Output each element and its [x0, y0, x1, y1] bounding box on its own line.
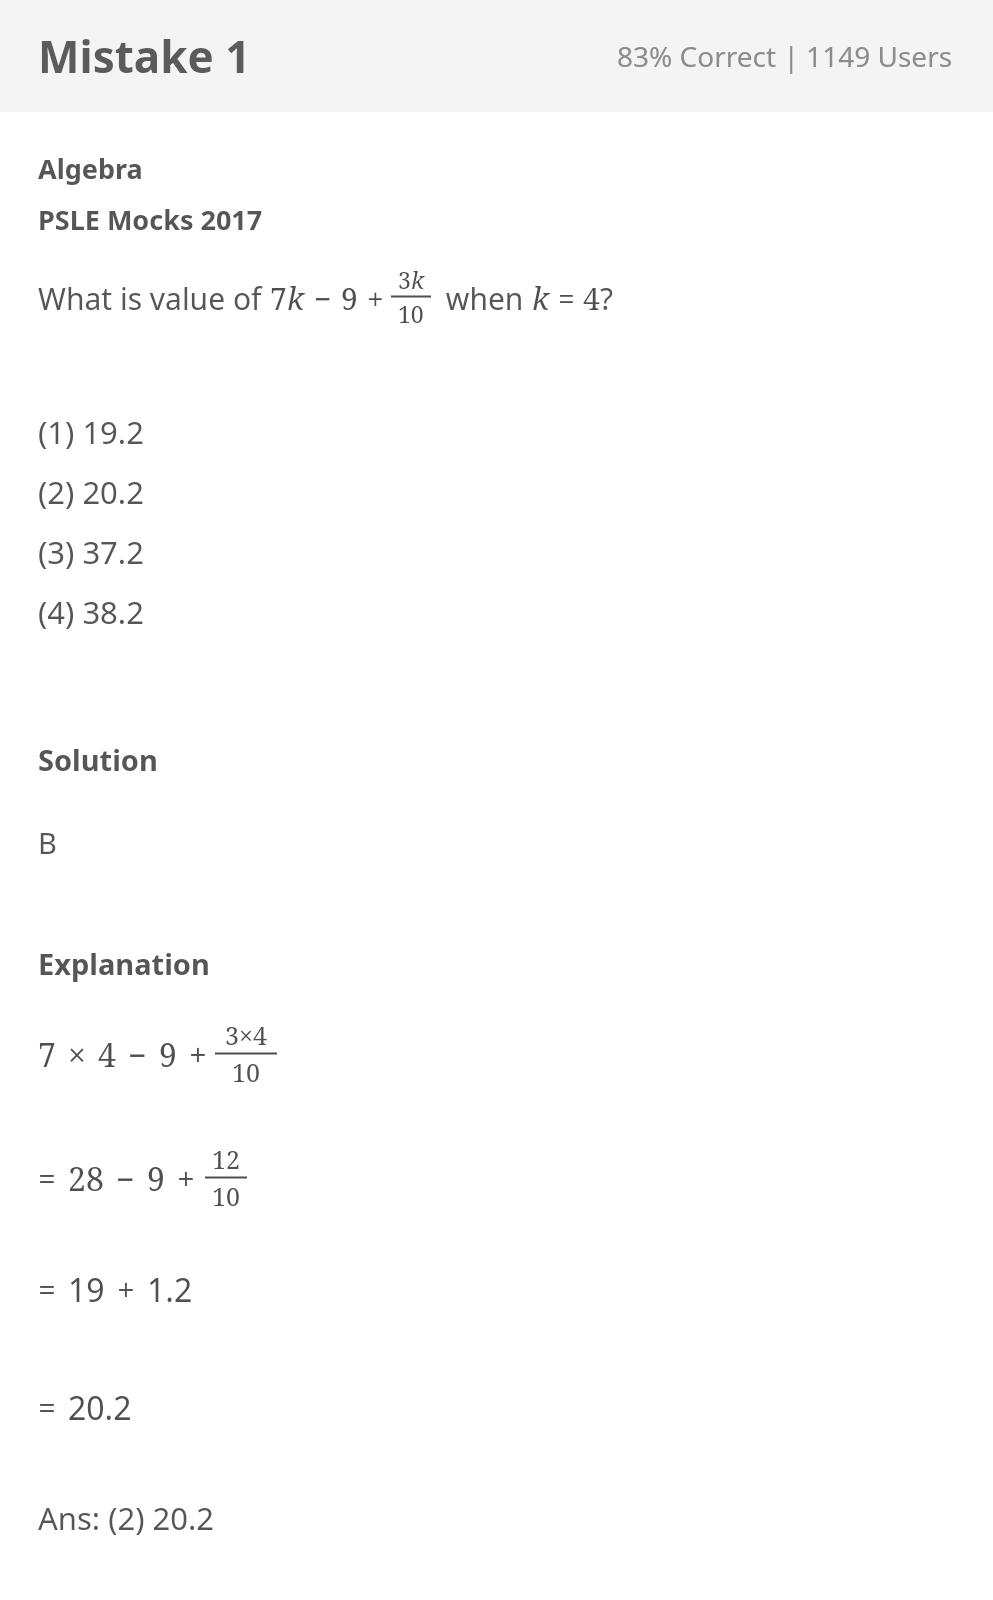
- staticText: =: [38, 1386, 56, 1430]
- staticText: Explanation: [38, 944, 210, 983]
- button[interactable]: (1) 19.2: [38, 402, 963, 462]
- staticText: k: [532, 278, 550, 319]
- staticText: =: [558, 278, 575, 319]
- staticText: 9: [341, 278, 358, 319]
- staticText: k: [411, 264, 425, 295]
- staticText: 4: [253, 1018, 267, 1052]
- staticText: 19: [68, 1268, 105, 1312]
- staticText: B: [38, 823, 57, 862]
- staticText: −: [314, 278, 332, 319]
- staticText: 12: [212, 1142, 240, 1176]
- staticText: (4) 38.2: [38, 591, 144, 633]
- staticText: 10: [232, 1055, 260, 1089]
- staticText: Algebra: [38, 150, 143, 187]
- staticText: 7: [270, 278, 287, 319]
- staticText: (1) 19.2: [38, 411, 144, 453]
- staticText: =: [38, 1157, 56, 1201]
- staticText: −: [116, 1157, 135, 1201]
- staticText: 1.2: [147, 1268, 193, 1312]
- staticText: +: [189, 1033, 207, 1077]
- staticText: +: [177, 1157, 195, 1201]
- staticText: Mistake 1: [38, 26, 251, 86]
- staticText: 4: [98, 1033, 116, 1077]
- button[interactable]: (2) 20.2: [38, 462, 963, 522]
- staticText: +: [367, 278, 384, 319]
- staticText: What is value of: [38, 278, 270, 319]
- staticText: 3: [398, 264, 411, 295]
- staticText: Solution: [38, 740, 158, 779]
- staticText: ?: [600, 278, 614, 319]
- staticText: ×: [239, 1018, 253, 1052]
- staticText: PSLE Mocks 2017: [38, 201, 263, 238]
- staticText: 83% Correct | 1149 Users: [617, 37, 953, 75]
- staticText: 3: [225, 1018, 239, 1052]
- staticText: ×: [68, 1033, 86, 1077]
- staticText: Ans: (2) 20.2: [38, 1497, 215, 1539]
- staticText: =: [38, 1268, 56, 1312]
- staticText: 4: [583, 278, 600, 319]
- staticText: 9: [159, 1033, 177, 1077]
- staticText: k: [287, 278, 305, 319]
- staticText: 20.2: [68, 1386, 132, 1430]
- button[interactable]: (4) 38.2: [38, 582, 963, 642]
- staticText: 7: [38, 1033, 56, 1077]
- staticText: 28: [68, 1157, 104, 1201]
- staticText: +: [117, 1268, 135, 1312]
- staticText: 10: [212, 1179, 240, 1213]
- staticText: when: [438, 278, 532, 319]
- staticText: (3) 37.2: [38, 531, 144, 573]
- staticText: (2) 20.2: [38, 471, 144, 513]
- staticText: −: [128, 1033, 147, 1077]
- staticText: 9: [147, 1157, 165, 1201]
- staticText: 10: [398, 298, 424, 329]
- button[interactable]: (3) 37.2: [38, 522, 963, 582]
